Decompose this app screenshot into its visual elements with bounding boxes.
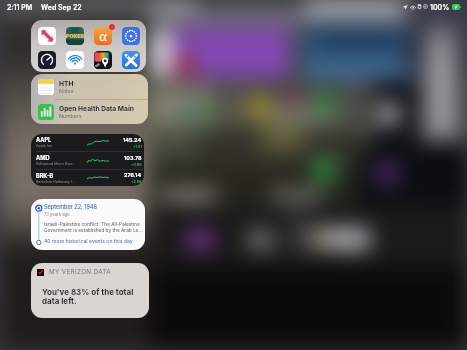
- button[interactable]: AMD: [36, 152, 142, 169]
- staticText: Numbers: [59, 113, 82, 119]
- button[interactable]: MY VERIZON DATA: [31, 263, 149, 318]
- button[interactable]: Tools: [122, 51, 140, 69]
- staticText: 276.14: [124, 172, 142, 179]
- staticText: 100%: [430, 3, 450, 11]
- button[interactable]: Maps: [94, 51, 112, 69]
- button[interactable]: AAPL: [31, 134, 144, 186]
- staticText: AAPL: [36, 137, 52, 144]
- button[interactable]: September 22, 1948: [31, 199, 145, 250]
- staticText: Apple Inc.: [36, 144, 54, 148]
- button[interactable]: Open Health Data Main: [31, 100, 148, 124]
- staticText: α: [99, 27, 108, 45]
- staticText: Advanced Micro Devi…: [36, 162, 76, 166]
- staticText: Open Health Data Main: [59, 105, 134, 113]
- staticText: +1.81: [133, 144, 142, 149]
- staticText: AMD: [36, 155, 50, 162]
- staticText: +2.06: [131, 179, 142, 184]
- staticText: Berkshire Hathaway I…: [36, 180, 76, 184]
- staticText: September 22, 1948: [44, 204, 98, 211]
- button[interactable]: HTH: [31, 74, 148, 99]
- staticText: POKER: [66, 33, 84, 39]
- staticText: HTH: [59, 80, 74, 88]
- staticText: +0.66: [131, 162, 142, 167]
- button[interactable]: Speedtest: [38, 51, 56, 69]
- staticText: 103.78: [124, 155, 142, 162]
- staticText: Wed Sep 22: [41, 3, 82, 11]
- staticText: Notes: [59, 88, 74, 94]
- button[interactable]: Poker: [66, 27, 84, 45]
- staticText: 145.24: [123, 137, 142, 144]
- button[interactable]: Alpha: [94, 27, 112, 45]
- button[interactable]: AAPL: [36, 134, 142, 151]
- button[interactable]: Apple News: [38, 27, 56, 45]
- button[interactable]: BRK-B: [36, 170, 142, 186]
- staticText: 73 years ago: [44, 212, 70, 217]
- staticText: MY VERIZON DATA: [49, 268, 111, 276]
- staticText: You've 83% of the total data left.: [42, 287, 134, 306]
- staticText: Israeli-Palestine conflict: The All-Pale…: [44, 221, 143, 233]
- button[interactable]: Ring: [122, 27, 140, 45]
- staticText: 2:11 PM: [7, 3, 33, 11]
- staticText: 40 more historical events on this day: [44, 238, 133, 244]
- staticText: BRK-B: [36, 173, 54, 180]
- button[interactable]: Wi-Fi: [66, 51, 84, 69]
